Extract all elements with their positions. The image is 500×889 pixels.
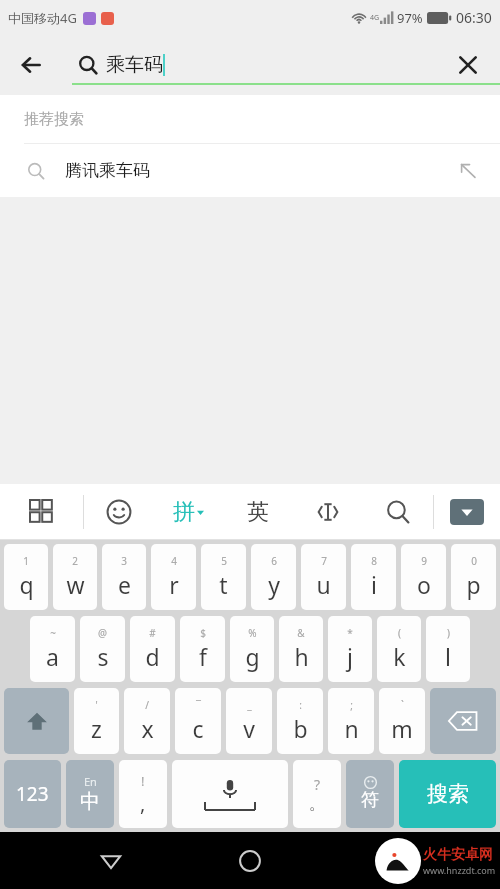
staticText: c bbox=[192, 713, 204, 744]
staticText: t bbox=[219, 569, 228, 600]
staticText: ) bbox=[447, 626, 450, 640]
staticText: @ bbox=[98, 626, 107, 640]
button[interactable]: Back bbox=[10, 43, 54, 87]
staticText: q bbox=[19, 569, 34, 600]
button[interactable]: : bbox=[277, 688, 323, 754]
button[interactable]: # bbox=[130, 616, 175, 682]
staticText: En bbox=[84, 774, 97, 789]
staticText: i bbox=[371, 569, 377, 600]
staticText: ! bbox=[141, 772, 145, 790]
button[interactable]: Hide keyboard bbox=[434, 484, 500, 540]
staticText: ( bbox=[398, 626, 401, 640]
button[interactable]: Home bbox=[222, 833, 278, 889]
staticText: 5 bbox=[221, 554, 227, 568]
button[interactable]: cursor bbox=[293, 484, 363, 540]
button[interactable]: * bbox=[328, 616, 372, 682]
staticText: 中 bbox=[80, 789, 100, 814]
staticText: * bbox=[347, 626, 353, 640]
button[interactable]: 7 bbox=[301, 544, 346, 610]
staticText: $ bbox=[200, 626, 206, 640]
button[interactable]: 0 bbox=[451, 544, 496, 610]
staticText: 123 bbox=[16, 781, 49, 807]
staticText: _ bbox=[247, 698, 252, 712]
staticText: 9 bbox=[421, 554, 427, 568]
button[interactable]: 2 bbox=[53, 544, 97, 610]
staticText: r bbox=[169, 569, 179, 600]
button[interactable]: 8 bbox=[351, 544, 396, 610]
button[interactable]: Grid bbox=[0, 484, 83, 540]
staticText: 英 bbox=[247, 498, 269, 526]
staticText: ¯ bbox=[196, 698, 201, 712]
button[interactable]: Shift bbox=[4, 688, 69, 754]
staticText: 7 bbox=[321, 554, 327, 568]
button[interactable]: 3 bbox=[102, 544, 146, 610]
button[interactable]: $ bbox=[180, 616, 225, 682]
button[interactable]: 1 bbox=[4, 544, 48, 610]
button[interactable]: pin bbox=[153, 484, 223, 540]
staticText: # bbox=[149, 626, 156, 640]
staticText: a bbox=[46, 641, 59, 672]
button[interactable]: 123 bbox=[4, 760, 61, 828]
staticText: / bbox=[145, 698, 149, 712]
button[interactable]: ? bbox=[293, 760, 341, 828]
button[interactable]: search bbox=[363, 484, 433, 540]
staticText: 拼 bbox=[173, 498, 195, 526]
staticText: 06:30 bbox=[456, 8, 492, 27]
button[interactable]: 符 bbox=[346, 760, 394, 828]
staticText: ' bbox=[95, 698, 98, 712]
staticText: f bbox=[199, 641, 207, 672]
button[interactable]: ; bbox=[328, 688, 374, 754]
staticText: ~ bbox=[50, 626, 56, 640]
button[interactable]: 4 bbox=[151, 544, 196, 610]
button[interactable]: emoji bbox=[84, 484, 153, 540]
staticText: u bbox=[316, 569, 331, 600]
staticText: 4G bbox=[370, 13, 380, 23]
staticText: 火牛安卓网 bbox=[423, 846, 493, 864]
staticText: 6 bbox=[271, 554, 277, 568]
staticText: d bbox=[145, 641, 160, 672]
button[interactable]: ¯ bbox=[175, 688, 221, 754]
staticText: 中国移动4G bbox=[8, 9, 77, 27]
button[interactable]: 6 bbox=[251, 544, 296, 610]
staticText: b bbox=[293, 713, 308, 744]
button[interactable]: _ bbox=[226, 688, 272, 754]
staticText: k bbox=[393, 641, 406, 672]
staticText: 0 bbox=[471, 554, 477, 568]
button[interactable]: Clear bbox=[446, 43, 490, 87]
button[interactable]: Space / Voice input bbox=[172, 760, 288, 828]
staticText: v bbox=[243, 713, 255, 744]
button[interactable]: % bbox=[230, 616, 274, 682]
staticText: o bbox=[417, 569, 431, 600]
button[interactable]: 9 bbox=[401, 544, 446, 610]
button[interactable]: ! bbox=[119, 760, 167, 828]
button[interactable]: Backspace bbox=[430, 688, 496, 754]
button[interactable]: & bbox=[279, 616, 323, 682]
button[interactable]: ( bbox=[377, 616, 421, 682]
button[interactable]: @ bbox=[80, 616, 125, 682]
staticText: y bbox=[268, 569, 280, 600]
staticText: j bbox=[347, 641, 353, 672]
staticText: ` bbox=[401, 698, 404, 712]
button[interactable]: 腾讯乘车码 bbox=[0, 144, 500, 197]
button[interactable]: En bbox=[66, 760, 114, 828]
staticText: www.hnzzdt.com bbox=[423, 864, 496, 876]
staticText: z bbox=[91, 713, 102, 744]
staticText: w bbox=[66, 569, 85, 600]
staticText: e bbox=[118, 569, 131, 600]
button[interactable]: ' bbox=[74, 688, 119, 754]
staticText: p bbox=[466, 569, 481, 600]
button[interactable]: eng bbox=[223, 484, 293, 540]
button[interactable]: ` bbox=[379, 688, 425, 754]
button[interactable]: Recents bbox=[361, 833, 417, 889]
staticText: n bbox=[344, 713, 359, 744]
button[interactable]: 搜索 bbox=[399, 760, 496, 828]
staticText: 4 bbox=[171, 554, 177, 568]
button[interactable]: ~ bbox=[30, 616, 75, 682]
staticText: ? bbox=[314, 775, 321, 794]
button[interactable]: Back bbox=[83, 833, 139, 889]
button[interactable]: 5 bbox=[201, 544, 246, 610]
button[interactable]: ) bbox=[426, 616, 470, 682]
button[interactable]: / bbox=[124, 688, 170, 754]
staticText: 97% bbox=[397, 9, 423, 27]
staticText: 1 bbox=[23, 554, 29, 568]
